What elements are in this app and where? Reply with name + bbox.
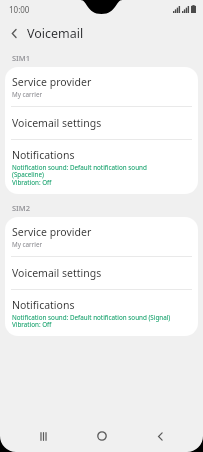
button[interactable]: Voicemail settings [5, 107, 198, 139]
button[interactable]: Voicemail settings [5, 257, 198, 289]
staticText: Voicemail settings [12, 266, 102, 280]
button[interactable]: Home [86, 420, 118, 452]
staticText: Service provider [12, 75, 92, 89]
staticText: Voicemail settings [12, 116, 102, 130]
staticText: Notifications [12, 148, 75, 162]
button[interactable]: Back [3, 22, 25, 44]
staticText: Notification sound: Default notification… [12, 313, 171, 329]
staticText: SIM2 [12, 203, 30, 213]
button[interactable]: Service provider [5, 67, 198, 106]
staticText: My carrier [12, 90, 43, 99]
staticText: Notification sound: Default notification… [12, 163, 147, 187]
button[interactable]: Recents [27, 420, 59, 452]
staticText: Notifications [12, 298, 75, 312]
staticText: Voicemail [27, 25, 84, 42]
button[interactable]: Service provider [5, 217, 198, 256]
button[interactable]: Back [144, 420, 176, 452]
staticText: SIM1 [12, 53, 30, 63]
button[interactable]: Notifications [5, 140, 198, 194]
staticText: 10:00 [9, 4, 30, 15]
button[interactable]: Notifications [5, 290, 198, 336]
staticText: My carrier [12, 240, 43, 249]
staticText: Service provider [12, 225, 92, 239]
